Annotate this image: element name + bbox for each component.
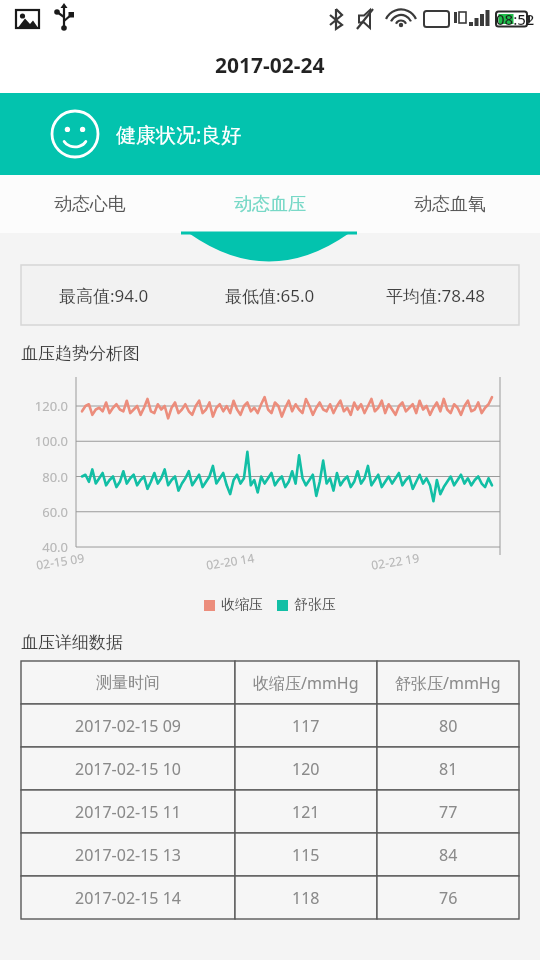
- staticText: 2017-02-24: [215, 51, 325, 80]
- button[interactable]: 动态心电: [0, 175, 180, 233]
- staticText: 84: [439, 844, 458, 866]
- button[interactable]: 动态血压: [180, 175, 360, 233]
- staticText: 收缩压: [221, 596, 263, 614]
- staticText: 100.0: [18, 432, 68, 450]
- button[interactable]: 2017-02-15 14: [21, 876, 519, 919]
- staticText: 40.0: [18, 538, 68, 556]
- staticText: 2017-02-15 14: [75, 887, 181, 909]
- staticText: 血压详细数据: [21, 632, 123, 653]
- button[interactable]: 2017-02-15 10: [21, 747, 519, 790]
- other: 健康状况 良好: [50, 109, 100, 159]
- staticText: 60.0: [18, 503, 68, 521]
- staticText: 收缩压/mmHg: [253, 672, 359, 694]
- staticText: 118: [292, 887, 320, 909]
- staticText: 2017-02-15 13: [75, 844, 181, 866]
- staticText: 81: [439, 758, 458, 780]
- staticText: 115: [292, 844, 320, 866]
- staticText: 动态血压: [234, 193, 306, 216]
- staticText: 120: [292, 758, 320, 780]
- staticText: 动态心电: [54, 193, 126, 216]
- staticText: 最高值:94.0: [59, 284, 149, 307]
- staticText: 2017-02-15 10: [75, 758, 181, 780]
- staticText: 02-20 14: [205, 549, 256, 573]
- staticText: 117: [292, 715, 320, 737]
- staticText: 平均值:78.48: [386, 284, 486, 307]
- staticText: 舒张压/mmHg: [395, 672, 501, 694]
- staticText: 08:52: [496, 9, 535, 29]
- staticText: 2017-02-15 11: [75, 801, 181, 823]
- button[interactable]: 测量时间: [21, 661, 519, 704]
- staticText: 最低值:65.0: [225, 284, 315, 307]
- button[interactable]: 健康状况 良好: [0, 93, 540, 175]
- button[interactable]: 2017-02-15 09: [21, 704, 519, 747]
- button[interactable]: 动态血氧: [360, 175, 540, 233]
- staticText: 02-15 09: [35, 549, 86, 573]
- button[interactable]: 最高值:94.0: [21, 265, 519, 325]
- staticText: 80: [439, 715, 458, 737]
- staticText: 血压趋势分析图: [21, 343, 140, 364]
- staticText: 77: [439, 801, 458, 823]
- staticText: 动态血氧: [414, 193, 486, 216]
- staticText: 76: [439, 887, 458, 909]
- button[interactable]: 2017-02-15 11: [21, 790, 519, 833]
- staticText: 02-22 19: [370, 549, 421, 573]
- staticText: 80.0: [18, 468, 68, 486]
- button[interactable]: 2017-02-15 13: [21, 833, 519, 876]
- staticText: 健康状况:良好: [116, 121, 242, 148]
- staticText: 舒张压: [294, 596, 336, 614]
- staticText: 测量时间: [96, 673, 160, 693]
- staticText: 2017-02-15 09: [75, 715, 181, 737]
- staticText: 121: [292, 801, 320, 823]
- staticText: 120.0: [18, 397, 68, 415]
